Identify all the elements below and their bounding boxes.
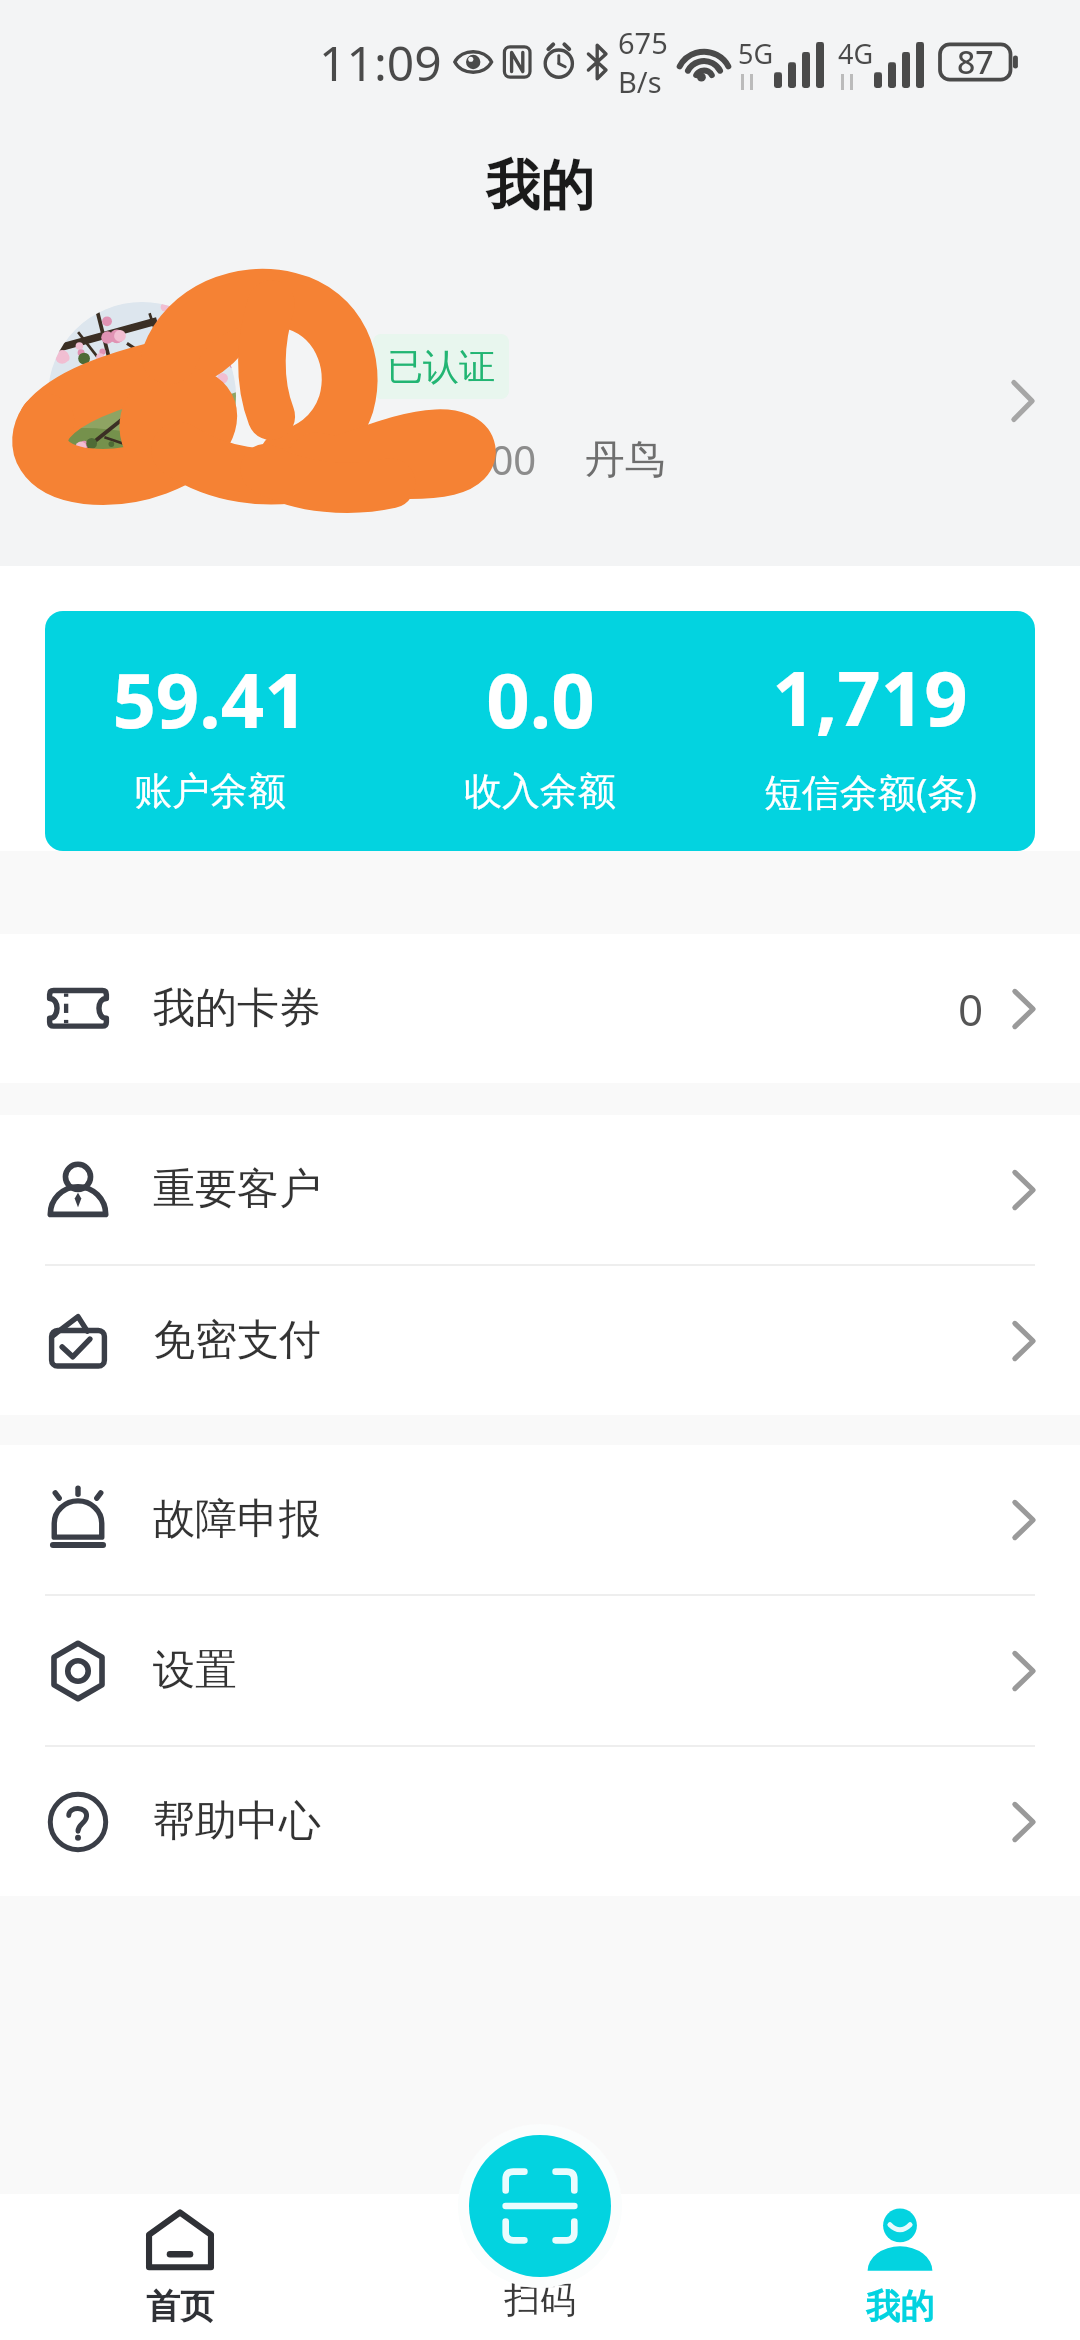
button[interactable]: 59.41	[45, 611, 1035, 851]
staticText: 59.41	[112, 647, 308, 751]
staticText: 重要客户	[153, 1163, 321, 1216]
staticText: 1,719	[772, 645, 968, 749]
button[interactable]: 扫码	[360, 2194, 720, 2340]
staticText: 0	[958, 979, 984, 1039]
staticText: 87	[957, 40, 994, 84]
staticText: B/s	[618, 62, 662, 101]
button[interactable]: 扫一扫	[469, 2135, 611, 2277]
staticText: 设置	[153, 1644, 237, 1697]
button[interactable]: 重要客户	[0, 1115, 1080, 1264]
staticText: 短信余额(条)	[764, 765, 977, 817]
staticText: 我的	[486, 152, 594, 220]
button[interactable]: 已认证	[0, 256, 1080, 566]
staticText: 11:09	[319, 30, 442, 95]
staticText: 0.0	[486, 647, 595, 751]
button[interactable]: 我的	[720, 2194, 1080, 2340]
staticText: 首页	[146, 2285, 214, 2328]
staticText: 已认证	[387, 344, 495, 389]
button[interactable]: 帮助中心	[0, 1747, 1080, 1896]
staticText: 丹鸟	[585, 434, 665, 484]
staticText: 我的	[866, 2285, 934, 2328]
button[interactable]: 首页	[0, 2194, 360, 2340]
staticText: 675	[618, 23, 668, 62]
staticText: 账户余额	[134, 767, 286, 815]
staticText: 故障申报	[153, 1493, 321, 1546]
button[interactable]: 我的卡券	[0, 934, 1080, 1083]
staticText: 我的卡券	[153, 982, 321, 1035]
staticText: 4G	[838, 35, 874, 72]
staticText: 扫码	[504, 2277, 576, 2322]
staticText: 帮助中心	[153, 1795, 321, 1848]
staticText: 免密支付	[153, 1314, 321, 1367]
button[interactable]: 故障申报	[0, 1445, 1080, 1594]
button[interactable]: 免密支付	[0, 1266, 1080, 1415]
staticText: 收入余额	[464, 767, 616, 815]
staticText: 1380000	[376, 432, 537, 486]
button[interactable]: 设置	[0, 1596, 1080, 1745]
staticText: 5G	[738, 35, 774, 72]
